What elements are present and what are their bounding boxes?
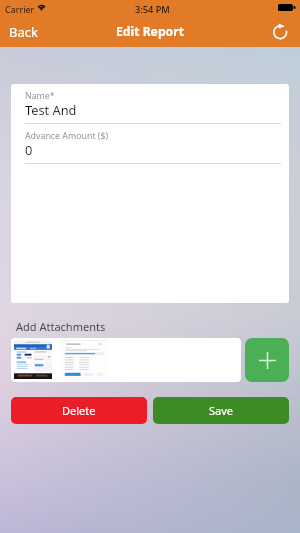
button[interactable] — [11, 338, 241, 382]
staticText: Add Attachments — [16, 319, 106, 334]
staticText: Edit Report — [116, 23, 184, 40]
staticText: 3:54 PM — [135, 3, 170, 16]
staticText: Test And — [25, 101, 77, 118]
staticText: 0 — [25, 141, 33, 158]
staticText: Advance Amount ($) — [25, 130, 109, 142]
staticText: Back — [9, 23, 38, 41]
staticText: Save — [209, 403, 234, 418]
staticText: Carrier — [5, 3, 35, 15]
button[interactable]: Delete — [11, 397, 147, 424]
button[interactable]: Refresh — [262, 17, 300, 47]
button[interactable]: Save — [153, 397, 289, 424]
staticText: Delete — [62, 403, 96, 418]
button[interactable]: Back — [0, 17, 47, 47]
staticText: Name* — [25, 90, 55, 102]
button[interactable]: Add attachment — [245, 338, 289, 382]
